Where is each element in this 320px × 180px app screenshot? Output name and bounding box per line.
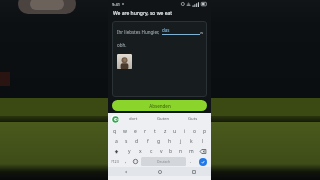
staticText: h — [168, 138, 172, 145]
staticText: i — [184, 128, 186, 135]
staticText: , — [125, 158, 127, 165]
button[interactable]: l — [197, 136, 208, 146]
button[interactable]: m — [186, 146, 196, 156]
staticText: k — [190, 138, 193, 145]
staticText: m — [189, 148, 194, 155]
button[interactable]: Google search — [111, 115, 119, 123]
button[interactable]: Space — [141, 157, 186, 166]
button[interactable]: Guten — [148, 113, 178, 125]
button[interactable]: u — [170, 126, 180, 136]
button[interactable]: Period — [187, 157, 195, 166]
button[interactable]: y — [124, 146, 135, 156]
button[interactable]: z — [160, 126, 170, 136]
button[interactable]: w — [120, 126, 130, 136]
staticText: We are hungry, so we eat — [113, 10, 173, 17]
button[interactable]: s — [121, 136, 131, 146]
button[interactable]: ?123 — [109, 157, 121, 166]
button[interactable]: Home — [143, 167, 177, 176]
staticText: 9:41 — [112, 2, 120, 7]
button[interactable]: i — [180, 126, 190, 136]
button[interactable]: k — [186, 136, 197, 146]
staticText: x — [139, 148, 142, 155]
staticText: s — [125, 138, 128, 145]
button[interactable]: t — [150, 126, 160, 136]
staticText: wei — [200, 30, 202, 35]
staticText: obh. — [117, 42, 127, 48]
staticText: Absenden — [149, 103, 171, 109]
staticText: dort — [129, 116, 138, 122]
button[interactable]: h — [164, 136, 175, 146]
staticText: . — [190, 158, 192, 165]
staticText: Deutsch — [157, 159, 171, 164]
staticText: z — [164, 128, 167, 135]
button[interactable]: Backspace — [196, 146, 210, 156]
button[interactable]: Back — [108, 167, 143, 176]
button[interactable]: Comma — [122, 157, 130, 166]
staticText: r — [144, 128, 147, 135]
staticText: das — [162, 27, 170, 33]
staticText: q — [113, 128, 117, 135]
staticText: f — [147, 138, 149, 145]
staticText: Guts — [188, 116, 198, 122]
button[interactable]: c — [146, 146, 156, 156]
staticText: ?123 — [111, 159, 119, 164]
staticText: w — [123, 128, 127, 135]
button[interactable]: Enter — [196, 157, 210, 166]
button[interactable]: Guts — [178, 113, 208, 125]
button[interactable]: a — [111, 136, 121, 146]
staticText: b — [169, 148, 173, 155]
button[interactable]: e — [130, 126, 140, 136]
button[interactable]: b — [166, 146, 176, 156]
button[interactable]: f — [142, 136, 153, 146]
button[interactable]: dort — [119, 113, 148, 125]
staticText: j — [180, 138, 182, 145]
staticText: Guten — [157, 116, 170, 122]
button[interactable]: Attached photo — [117, 54, 132, 69]
button[interactable]: r — [140, 126, 150, 136]
staticText: p — [203, 128, 207, 135]
button[interactable]: o — [190, 126, 200, 136]
button[interactable]: j — [175, 136, 186, 146]
staticText: d — [135, 138, 139, 145]
button[interactable]: Recent apps — [177, 167, 211, 176]
staticText: e — [134, 128, 137, 135]
staticText: y — [128, 148, 131, 155]
staticText: t — [154, 128, 156, 135]
staticText: Ihr liebstes Hungier, — [117, 29, 160, 35]
staticText: o — [193, 128, 197, 135]
staticText: a — [115, 138, 118, 145]
button[interactable]: q — [109, 126, 120, 136]
staticText: l — [202, 138, 204, 145]
button[interactable]: d — [131, 136, 142, 146]
button[interactable]: g — [153, 136, 164, 146]
button[interactable]: x — [135, 146, 146, 156]
staticText: v — [160, 148, 163, 155]
button[interactable]: Emoji — [131, 157, 140, 166]
staticText: u — [173, 128, 177, 135]
button[interactable]: n — [176, 146, 186, 156]
button[interactable]: Absenden — [112, 100, 207, 111]
button[interactable]: Ihr liebstes Hungier, — [112, 21, 207, 97]
button[interactable]: Shift — [109, 146, 124, 156]
staticText: g — [157, 138, 161, 145]
button[interactable]: p — [200, 126, 210, 136]
staticText: n — [179, 148, 183, 155]
button[interactable]: v — [156, 146, 166, 156]
staticText: c — [150, 148, 153, 155]
